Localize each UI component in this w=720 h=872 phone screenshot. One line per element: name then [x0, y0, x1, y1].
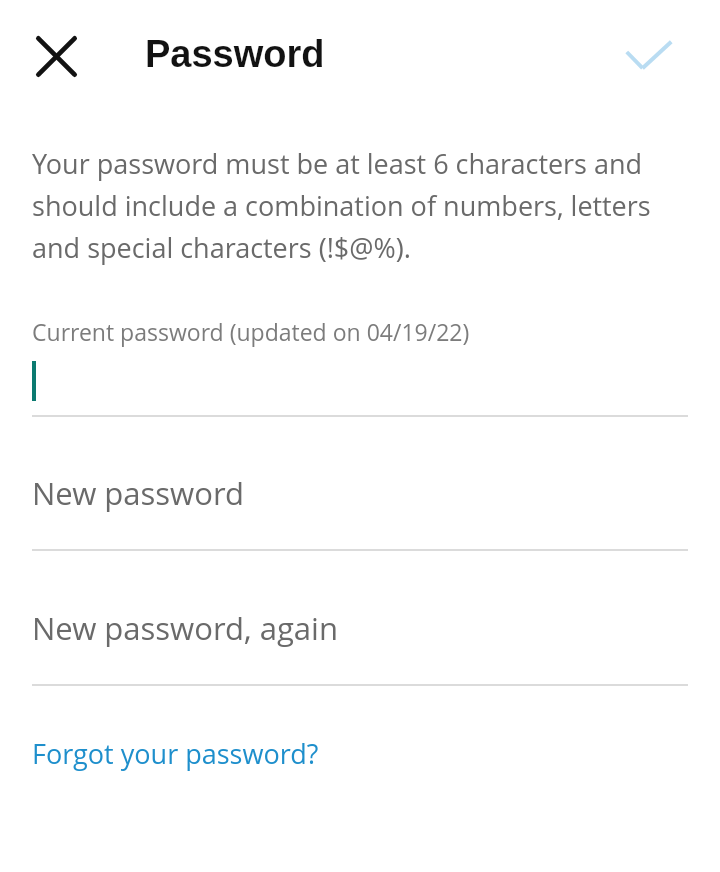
- staticText: Your password must be at least 6 charact…: [32, 145, 672, 266]
- staticText: New password, again: [32, 607, 338, 649]
- staticText: Current password (updated on 04/19/22): [32, 316, 470, 347]
- staticText: New password: [32, 472, 244, 514]
- button[interactable]: Close: [15, 15, 97, 97]
- staticText: Forgot your password?: [32, 735, 319, 772]
- staticText: Password: [145, 33, 325, 75]
- button[interactable]: New password, again: [32, 553, 688, 686]
- button[interactable]: Save password: [608, 14, 690, 96]
- button[interactable]: Forgot your password?: [32, 728, 319, 776]
- button[interactable]: Current password (updated on 04/19/22): [32, 300, 688, 418]
- button[interactable]: New password: [32, 418, 688, 551]
